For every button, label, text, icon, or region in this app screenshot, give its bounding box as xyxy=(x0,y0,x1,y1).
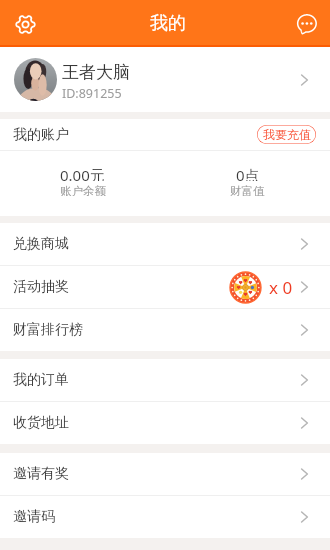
staticText: 活动抽奖 xyxy=(13,278,69,296)
staticText: ID:891255 xyxy=(62,85,122,102)
staticText: 0.00元 xyxy=(60,165,105,181)
button[interactable]: 我要充值 xyxy=(257,125,316,144)
button[interactable]: 邀请有奖 xyxy=(0,453,330,495)
staticText: 我的订单 xyxy=(13,371,69,389)
button[interactable]: 我的订单 xyxy=(0,359,330,401)
staticText: 0点 xyxy=(236,165,260,181)
button[interactable]: 邀请码 xyxy=(0,496,330,538)
button[interactable]: Messages xyxy=(292,10,320,38)
staticText: 王者大脑 xyxy=(62,62,130,83)
staticText: 财富排行榜 xyxy=(13,321,83,339)
staticText: 邀请有奖 xyxy=(13,465,69,483)
staticText: 邀请码 xyxy=(13,508,55,526)
staticText: 我要充值 xyxy=(263,127,311,142)
button[interactable]: 兑换商城 xyxy=(0,223,330,265)
staticText: 我的 xyxy=(150,12,186,35)
staticText: 收货地址 xyxy=(13,414,69,432)
button[interactable]: 收货地址 xyxy=(0,402,330,444)
button[interactable]: 活动抽奖 xyxy=(0,266,330,308)
staticText: 兑换商城 xyxy=(13,235,69,253)
button[interactable]: Settings xyxy=(11,10,39,38)
button[interactable]: 王者大脑 xyxy=(0,47,330,112)
staticText: 账户余额 xyxy=(60,184,106,196)
staticText: 我的账户 xyxy=(13,126,69,144)
button[interactable]: 财富排行榜 xyxy=(0,309,330,351)
staticText: x 0 xyxy=(269,276,293,299)
staticText: 财富值 xyxy=(230,184,265,196)
